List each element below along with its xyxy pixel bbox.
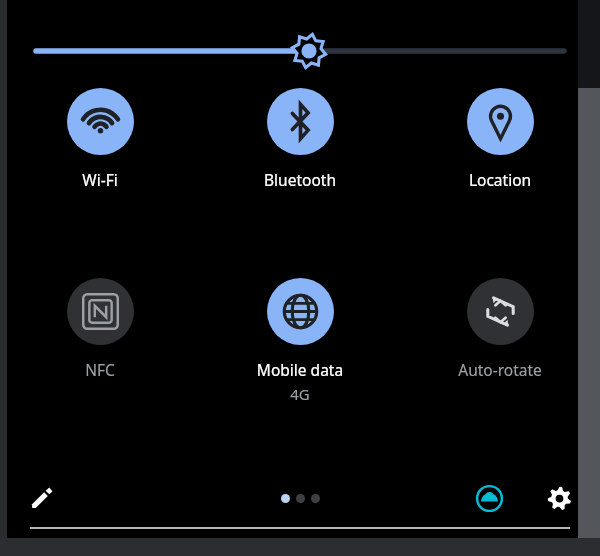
button[interactable]: Settings [536,475,582,521]
button[interactable]: User [466,475,512,521]
staticText: Bluetooth [200,169,400,190]
button[interactable]: Wi-Fi [0,88,200,190]
staticText: Auto-rotate [400,359,600,380]
staticText: NFC [0,359,200,380]
button[interactable]: NFC [0,278,200,380]
staticText: Location [400,169,600,190]
button[interactable]: Brightness [0,0,600,88]
button[interactable]: Auto-rotate [400,278,600,380]
button[interactable]: Location [400,88,600,190]
staticText: 4G [200,384,400,404]
staticText: Wi-Fi [0,169,200,190]
button[interactable]: Mobile data [200,278,400,404]
button[interactable]: Edit tiles [17,474,65,522]
staticText: Mobile data [200,359,400,380]
button[interactable]: Bluetooth [200,88,400,190]
